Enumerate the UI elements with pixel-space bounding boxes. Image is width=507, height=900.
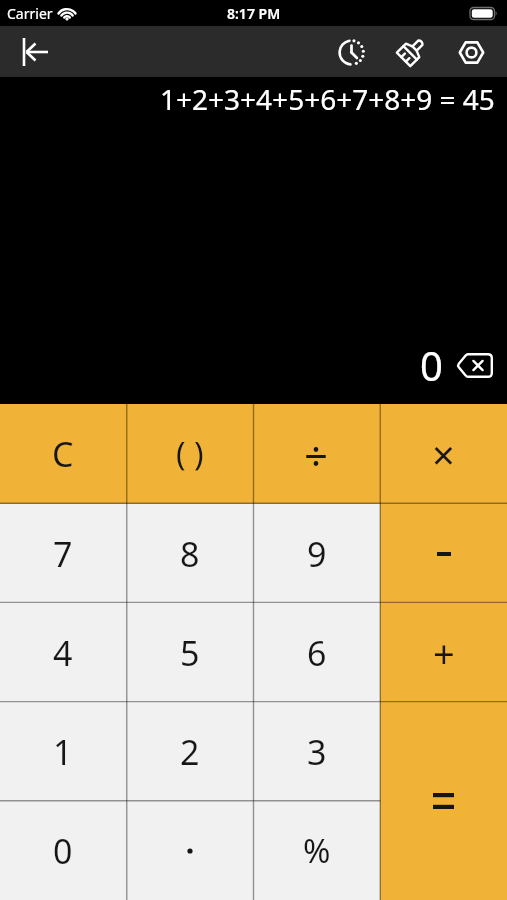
staticText: 4 bbox=[53, 630, 73, 676]
staticText: 2 bbox=[180, 729, 200, 775]
button[interactable] bbox=[456, 351, 494, 379]
button[interactable] bbox=[452, 33, 490, 71]
staticText: 7 bbox=[53, 531, 73, 577]
button[interactable]: 6 bbox=[253, 603, 380, 702]
staticText: + bbox=[433, 627, 455, 679]
staticText: C bbox=[52, 431, 74, 477]
button[interactable]: 9 bbox=[253, 504, 380, 603]
staticText: 8 bbox=[180, 531, 200, 577]
button[interactable]: × bbox=[380, 404, 507, 504]
button[interactable]: % bbox=[253, 801, 380, 900]
staticText: 5 bbox=[180, 630, 200, 676]
staticText: 8:17 PM bbox=[227, 4, 281, 23]
staticText: ( ) bbox=[176, 432, 204, 476]
staticText: 1+2+3+4+5+6+7+8+9 = 45 bbox=[160, 80, 495, 118]
staticText: Carrier bbox=[7, 4, 53, 23]
button[interactable] bbox=[380, 504, 507, 603]
button[interactable]: 8 bbox=[126, 504, 253, 603]
button[interactable] bbox=[380, 702, 507, 900]
button[interactable]: 7 bbox=[0, 504, 126, 603]
staticText: 0 bbox=[420, 338, 443, 392]
button[interactable] bbox=[332, 33, 370, 71]
button[interactable]: 3 bbox=[253, 702, 380, 801]
button[interactable]: 5 bbox=[126, 603, 253, 702]
staticText: × bbox=[432, 427, 455, 481]
button[interactable]: 2 bbox=[126, 702, 253, 801]
button[interactable]: 0 bbox=[0, 801, 126, 900]
staticText: 6 bbox=[307, 630, 327, 676]
staticText: ÷ bbox=[304, 426, 329, 483]
button[interactable] bbox=[126, 801, 253, 900]
staticText: 3 bbox=[307, 729, 327, 775]
staticText: 9 bbox=[307, 531, 327, 577]
staticText: % bbox=[303, 828, 331, 873]
button[interactable]: C bbox=[0, 404, 126, 504]
button[interactable] bbox=[392, 33, 430, 71]
button[interactable]: ÷ bbox=[253, 404, 380, 504]
button[interactable] bbox=[17, 32, 57, 72]
staticText: 1 bbox=[53, 729, 73, 775]
button[interactable]: 1 bbox=[0, 702, 126, 801]
button[interactable]: + bbox=[380, 603, 507, 702]
button[interactable]: ( ) bbox=[126, 404, 253, 504]
staticText: 0 bbox=[53, 828, 73, 874]
button[interactable]: 4 bbox=[0, 603, 126, 702]
